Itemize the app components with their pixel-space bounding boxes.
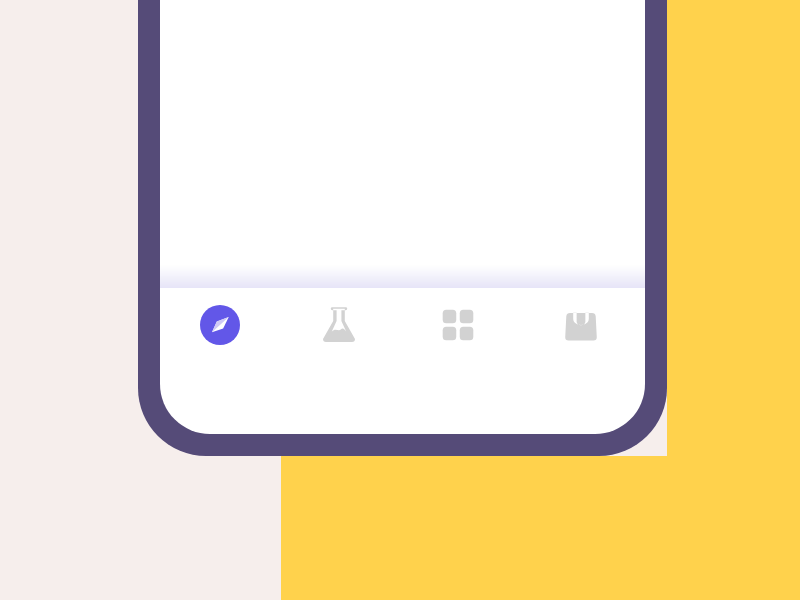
button[interactable]: Experiments	[279, 288, 398, 374]
button[interactable]: Explore	[160, 288, 279, 374]
button[interactable]: Shop	[517, 288, 645, 374]
button[interactable]: Categories	[398, 288, 517, 374]
